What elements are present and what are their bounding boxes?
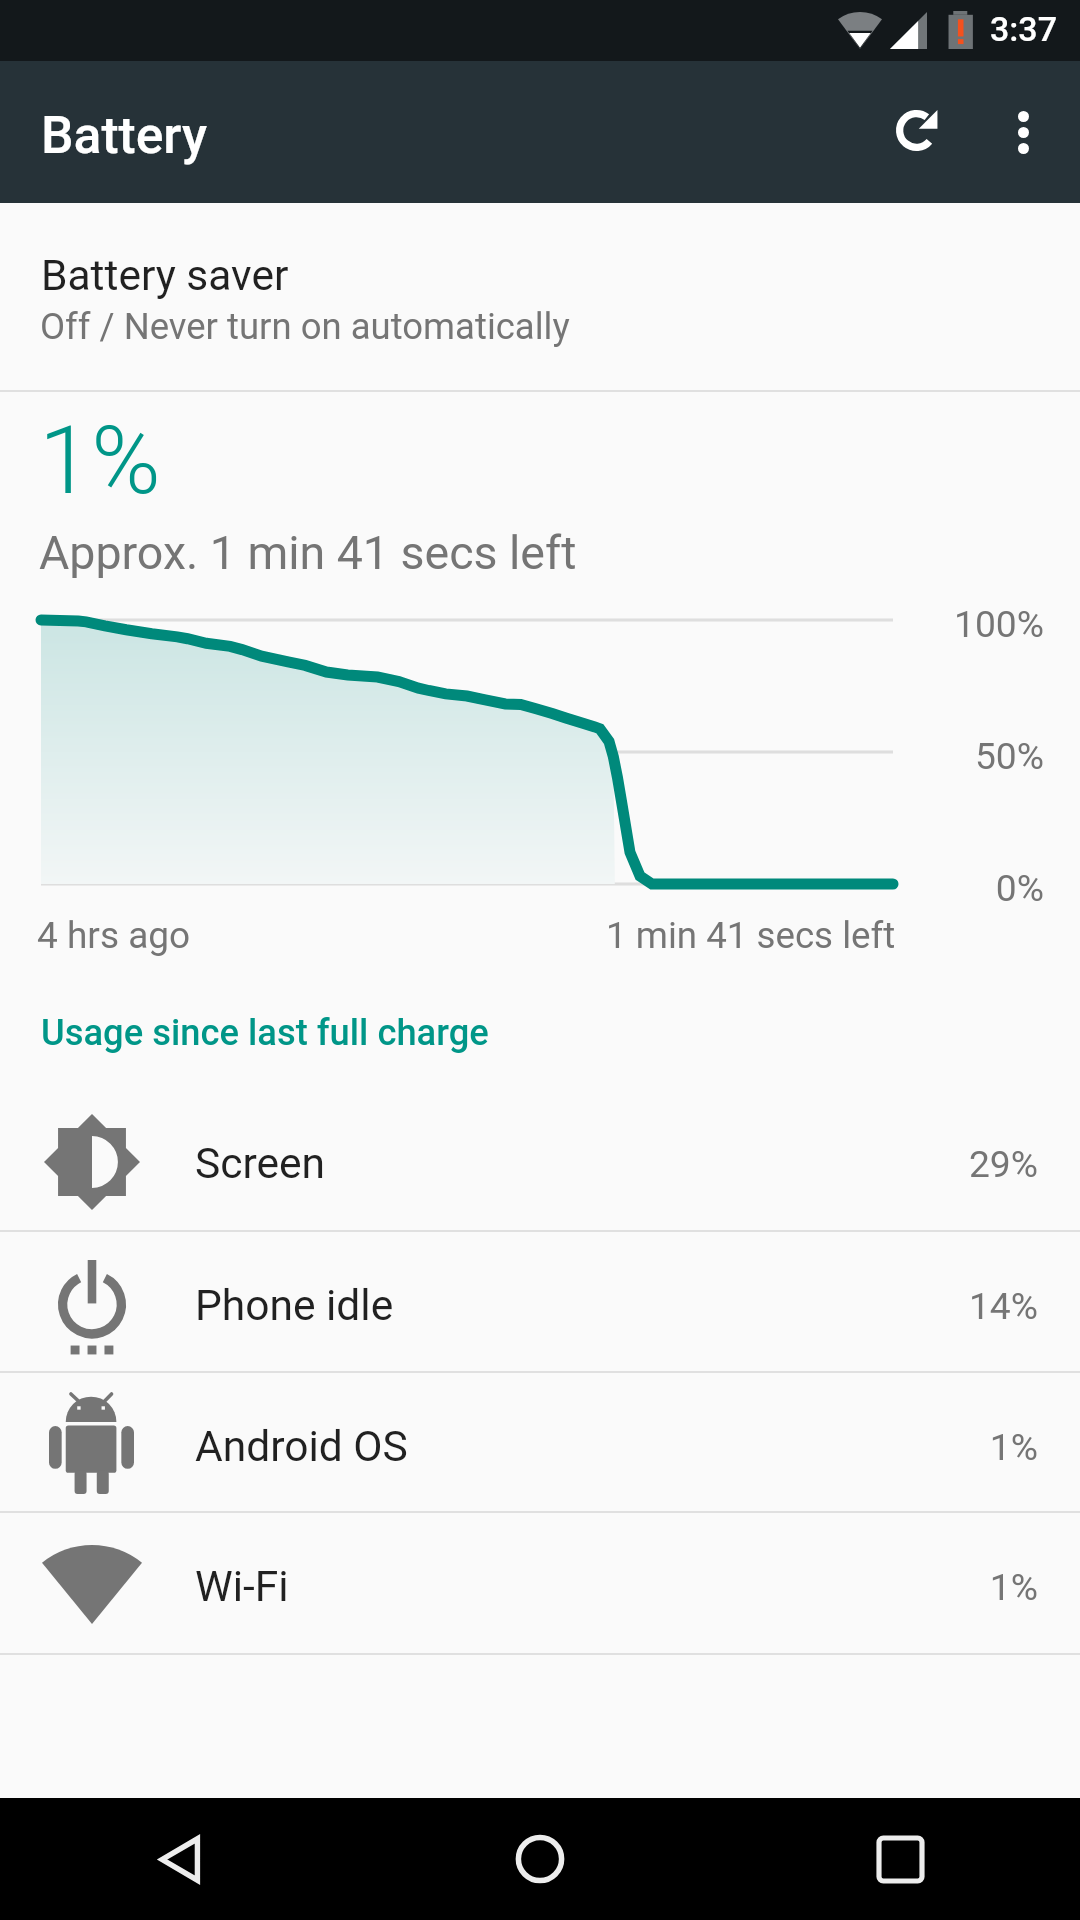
staticText: 1% <box>800 1565 1038 1609</box>
staticText: 1% <box>800 1425 1038 1469</box>
staticText: Screen <box>195 1139 326 1189</box>
staticText: Approx. 1 min 41 secs left <box>39 526 577 580</box>
staticText: Off / Never turn on automatically <box>40 305 570 348</box>
staticText: 50% <box>812 734 1044 778</box>
button[interactable]: Back <box>0 1798 360 1920</box>
button[interactable]: Battery saver <box>0 203 1080 391</box>
button[interactable]: Phone idle <box>0 1232 1080 1372</box>
staticText: Android OS <box>195 1422 408 1472</box>
staticText: 29% <box>800 1142 1038 1186</box>
button[interactable]: Recent apps <box>720 1798 1080 1920</box>
staticText: Wi-Fi <box>195 1562 289 1612</box>
staticText: Battery saver <box>41 251 289 301</box>
button[interactable]: Wi-Fi <box>0 1513 1080 1653</box>
button[interactable]: Refresh <box>866 61 968 203</box>
staticText: Phone idle <box>195 1281 394 1331</box>
staticText: 3:37 <box>990 9 1057 49</box>
staticText: Usage since last full charge <box>41 1011 489 1054</box>
staticText: 1 min 41 secs left <box>606 914 896 957</box>
staticText: Battery <box>41 105 207 165</box>
staticText: 14% <box>800 1284 1038 1328</box>
button[interactable]: More options <box>968 61 1080 203</box>
button[interactable]: Home <box>360 1798 720 1920</box>
staticText: 0% <box>812 866 1044 910</box>
staticText: 4 hrs ago <box>37 914 191 957</box>
button[interactable]: Screen <box>0 1090 1080 1230</box>
staticText: 1% <box>39 406 161 516</box>
button[interactable]: Android OS <box>0 1373 1080 1513</box>
staticText: 100% <box>812 602 1044 646</box>
